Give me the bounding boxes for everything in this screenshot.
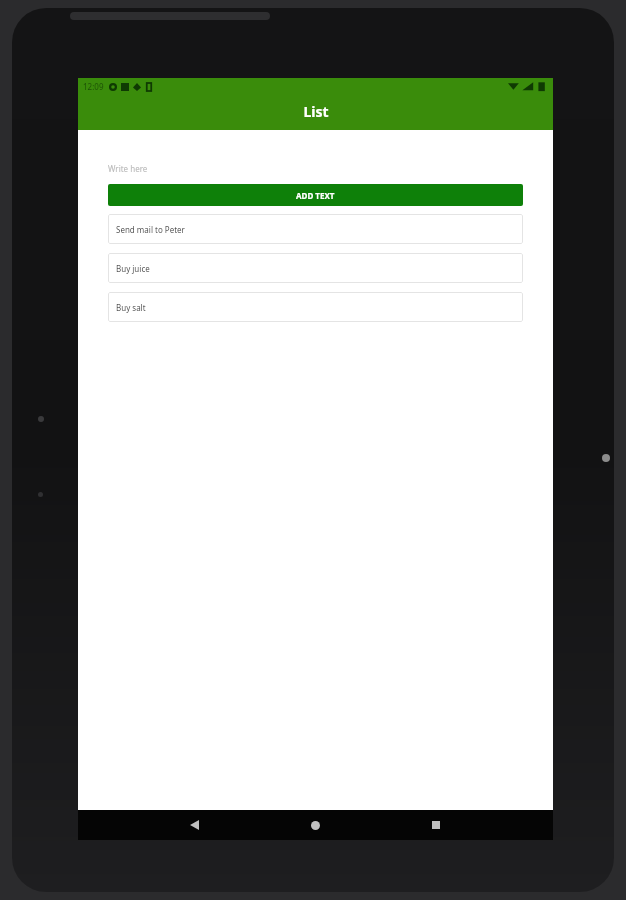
button[interactable]: Recent apps xyxy=(419,810,453,840)
staticText: 12:09 xyxy=(83,81,104,92)
staticText: Send mail to Peter xyxy=(116,224,185,235)
staticText: List xyxy=(303,102,329,121)
staticText: Write here xyxy=(108,163,148,174)
button[interactable]: Buy juice xyxy=(108,253,523,283)
button[interactable]: Back xyxy=(177,810,211,840)
button[interactable]: Write here xyxy=(108,158,523,178)
staticText: ADD TEXT xyxy=(296,190,335,201)
button[interactable]: Buy salt xyxy=(108,292,523,322)
staticText: Buy salt xyxy=(116,302,146,313)
button[interactable]: ADD TEXT xyxy=(108,184,523,206)
button[interactable]: Send mail to Peter xyxy=(108,214,523,244)
button[interactable]: Home xyxy=(298,810,332,840)
staticText: Buy juice xyxy=(116,263,150,274)
